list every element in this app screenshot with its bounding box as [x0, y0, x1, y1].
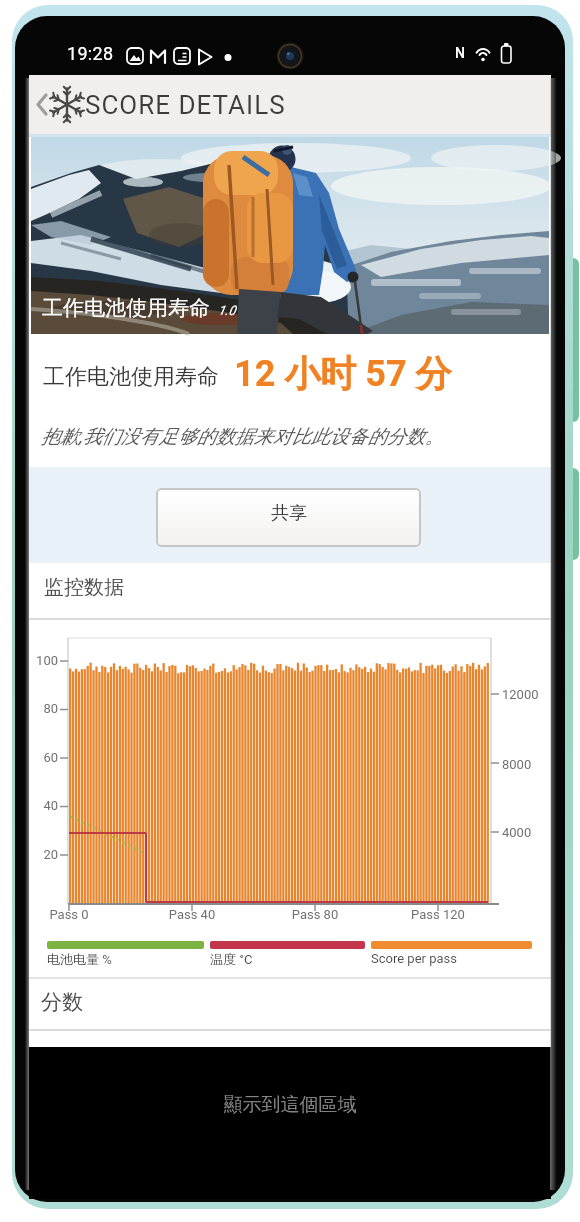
staticText: 100 — [26, 653, 58, 668]
staticText: 60 — [26, 750, 58, 765]
staticText: 19:28 — [67, 43, 114, 64]
staticText: Pass 0 — [29, 907, 109, 922]
staticText: Pass 40 — [152, 907, 232, 922]
staticText: Pass 80 — [275, 907, 355, 922]
staticText: 电池电量 % — [47, 951, 112, 967]
staticText: 抱歉,我们没有足够的数据来对比此设备的分数。 — [41, 425, 444, 449]
button[interactable]: 共享 — [156, 488, 421, 547]
staticText: N — [455, 45, 465, 61]
staticText: 12000 — [502, 687, 539, 702]
staticText: 共享 — [271, 502, 307, 525]
staticText: 8000 — [502, 757, 532, 772]
staticText: SCORE DETAILS — [85, 90, 286, 120]
staticText: 监控数据 — [44, 575, 124, 600]
staticText: 温度 °C — [210, 951, 253, 967]
staticText: 80 — [26, 701, 58, 716]
staticText: 40 — [26, 798, 58, 813]
staticText: 4000 — [502, 825, 532, 840]
staticText: 12 小时 57 分 — [234, 351, 452, 396]
staticText: Score per pass — [371, 951, 457, 966]
staticText: 工作电池使用寿命 — [42, 295, 210, 321]
staticText: 工作电池使用寿命 — [43, 363, 219, 391]
staticText: 顯示到這個區域 — [29, 1093, 551, 1117]
staticText: 分数 — [41, 989, 83, 1015]
staticText: 1.0 — [218, 303, 236, 318]
staticText: 20 — [26, 847, 58, 862]
staticText: Pass 120 — [398, 907, 478, 922]
button[interactable] — [30, 80, 85, 130]
